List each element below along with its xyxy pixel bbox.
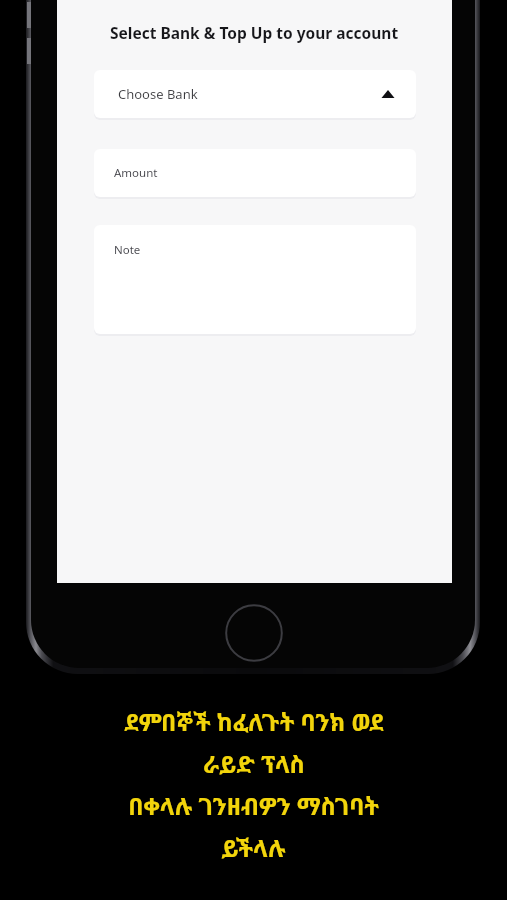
staticText: ይችላሉ — [221, 832, 286, 864]
other: Home — [225, 604, 283, 662]
button[interactable]: Choose Bank — [94, 70, 416, 118]
button[interactable]: Amount — [94, 149, 416, 197]
staticText: Choose Bank — [118, 85, 198, 103]
staticText: ራይድ ፕላስ — [203, 748, 305, 780]
staticText: ደምበኞች ከፈለጉት ባንክ ወደ — [124, 706, 384, 738]
other: Expand bank list — [380, 87, 396, 101]
staticText: Amount — [114, 165, 158, 181]
staticText: በቀላሉ ገንዘብዎን ማስገባት — [128, 790, 379, 822]
button[interactable]: Note — [94, 225, 416, 334]
staticText: Select Bank & Top Up to your account — [110, 22, 399, 43]
staticText: Note — [114, 242, 141, 258]
